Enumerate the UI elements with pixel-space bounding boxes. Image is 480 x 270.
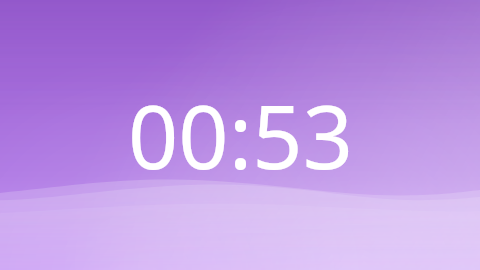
staticText: 00:53 — [128, 75, 353, 195]
button[interactable]: Timer, 00:53 remaining — [0, 0, 480, 270]
